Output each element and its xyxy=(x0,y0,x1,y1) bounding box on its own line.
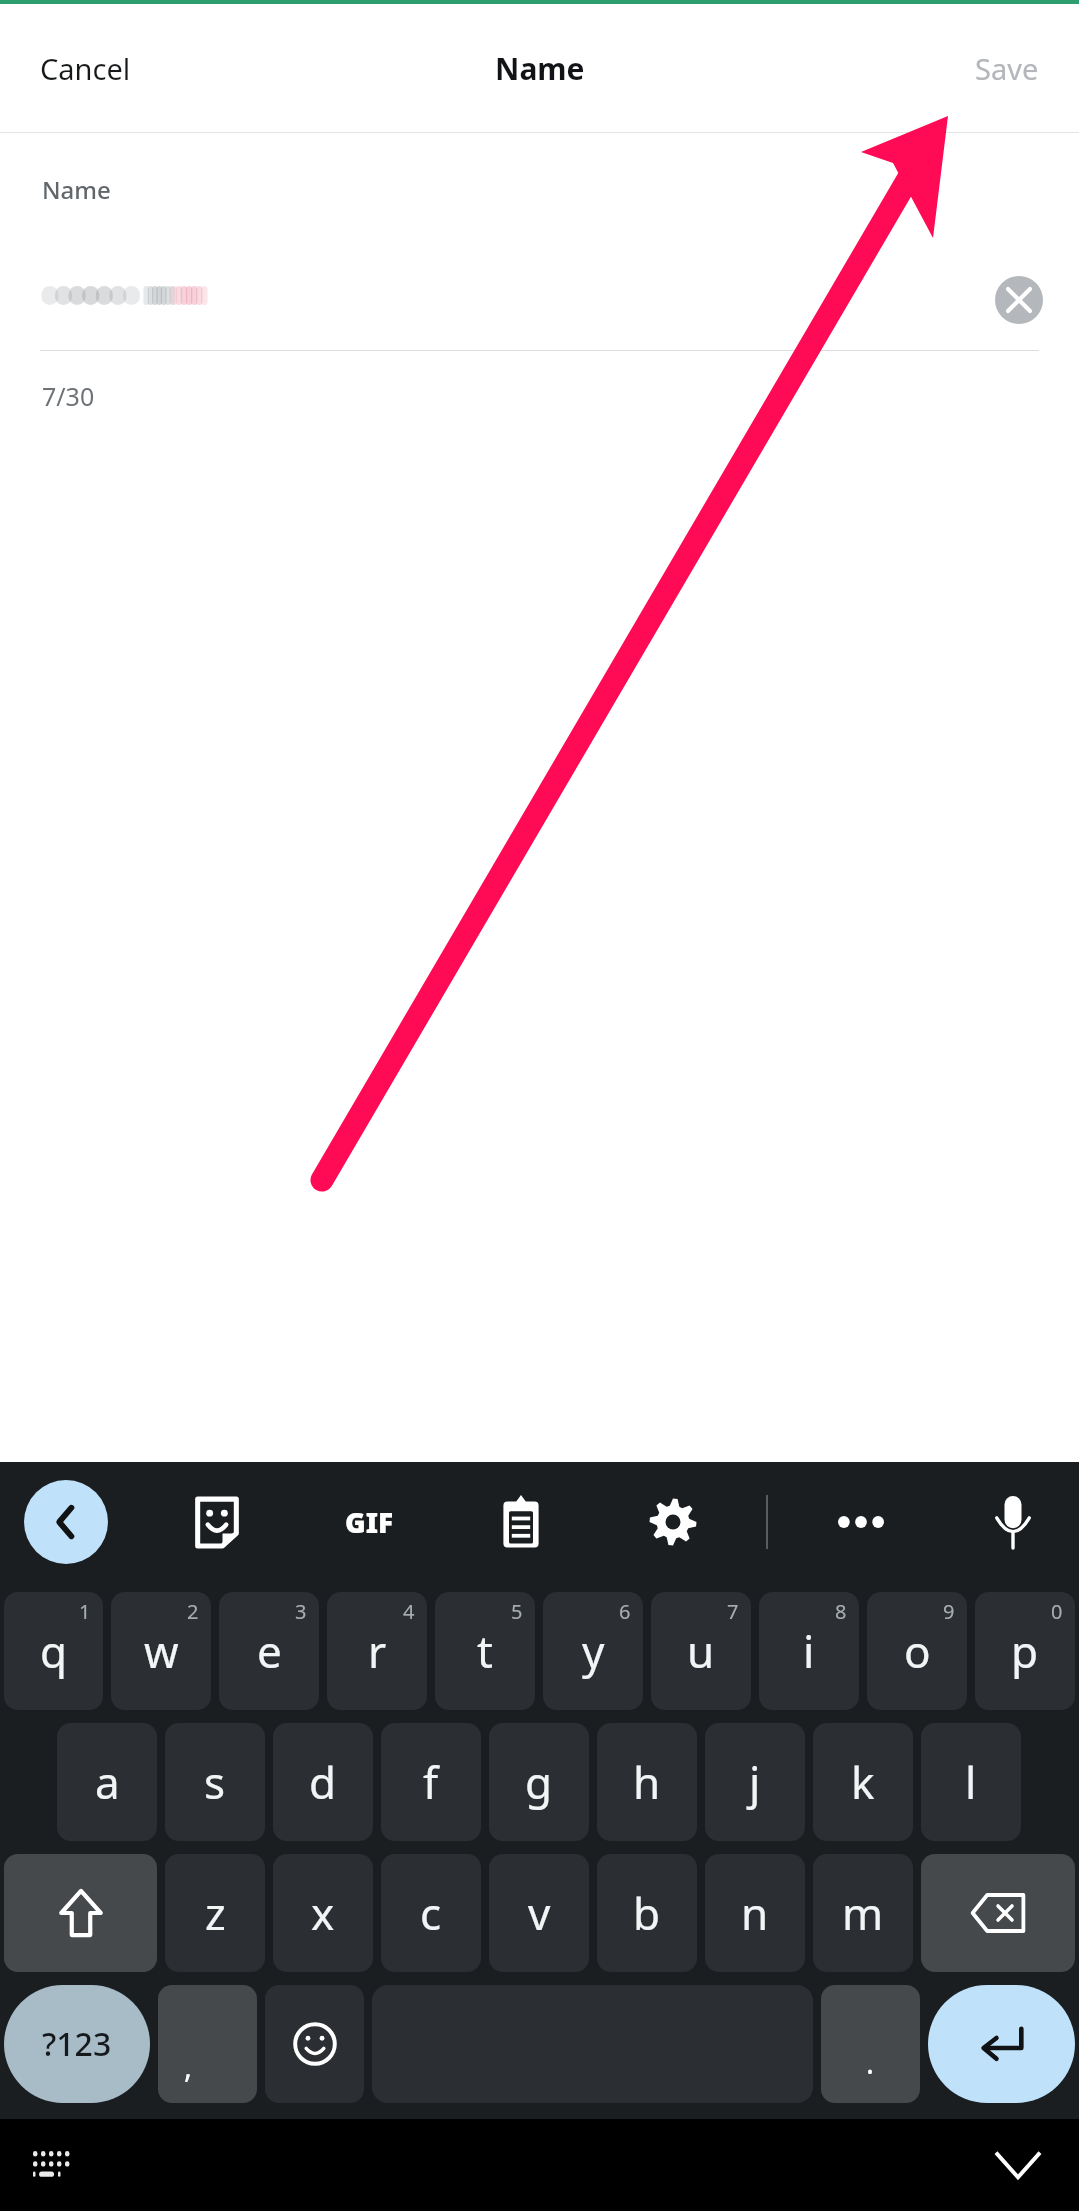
button[interactable]: Settings xyxy=(631,1480,715,1564)
button[interactable]: c xyxy=(381,1854,481,1972)
staticText: Cancel xyxy=(40,49,131,88)
button[interactable]: Hide keyboard xyxy=(983,2130,1053,2200)
button[interactable]: h xyxy=(597,1723,697,1841)
staticText: Save xyxy=(975,49,1039,88)
staticText: 1 xyxy=(79,1598,91,1625)
button[interactable]: p xyxy=(975,1592,1075,1710)
staticText: g xyxy=(525,1752,553,1812)
staticText: s xyxy=(204,1752,226,1812)
staticText: 9 xyxy=(943,1598,955,1625)
button[interactable]: f xyxy=(381,1723,481,1841)
staticText: 6 xyxy=(619,1598,631,1625)
button[interactable]: s xyxy=(165,1723,265,1841)
button[interactable]: Save xyxy=(953,35,1061,102)
button[interactable]: o xyxy=(867,1592,967,1710)
staticText: e xyxy=(257,1621,282,1681)
staticText: 4 xyxy=(403,1598,415,1625)
button[interactable]: q xyxy=(4,1592,103,1710)
button[interactable]: d xyxy=(273,1723,373,1841)
button[interactable]: e xyxy=(219,1592,319,1710)
button[interactable]: ?123 xyxy=(4,1985,150,2103)
staticText: a xyxy=(95,1752,120,1812)
button[interactable]: y xyxy=(543,1592,643,1710)
button[interactable]: z xyxy=(165,1854,265,1972)
button[interactable]: m xyxy=(813,1854,913,1972)
staticText: 2 xyxy=(187,1598,199,1625)
staticText: j xyxy=(749,1752,761,1812)
staticText: m xyxy=(842,1883,884,1943)
button[interactable]: Cancel xyxy=(18,35,153,102)
staticText: ?123 xyxy=(42,2022,112,2066)
staticText: p xyxy=(1011,1621,1039,1681)
button[interactable]: Switch keyboard xyxy=(20,2132,86,2198)
staticText: f xyxy=(423,1752,439,1812)
staticText: y xyxy=(582,1621,605,1681)
staticText: . xyxy=(866,2042,875,2083)
staticText: n xyxy=(741,1883,769,1943)
button[interactable]: v xyxy=(489,1854,589,1972)
staticText: x xyxy=(311,1883,335,1943)
button[interactable]: Back xyxy=(24,1480,108,1564)
staticText: GIF xyxy=(345,1503,394,1541)
button[interactable]: w xyxy=(111,1592,211,1710)
button[interactable]: Emoji xyxy=(265,1985,364,2103)
button[interactable]: n xyxy=(705,1854,805,1972)
button[interactable]: GIF xyxy=(327,1480,411,1564)
button[interactable]: More options xyxy=(819,1480,903,1564)
staticText: v xyxy=(528,1883,551,1943)
staticText: t xyxy=(477,1621,493,1681)
button[interactable]: g xyxy=(489,1723,589,1841)
button[interactable]: t xyxy=(435,1592,535,1710)
button[interactable]: j xyxy=(705,1723,805,1841)
button[interactable]: . xyxy=(821,1985,920,2103)
staticText: Name xyxy=(495,48,585,89)
button[interactable]: x xyxy=(273,1854,373,1972)
button[interactable]: Enter xyxy=(928,1985,1075,2103)
button[interactable]: u xyxy=(651,1592,751,1710)
staticText: b xyxy=(633,1883,661,1943)
button[interactable]: i xyxy=(759,1592,859,1710)
staticText: 7/30 xyxy=(42,379,95,413)
staticText: r xyxy=(368,1621,387,1681)
button[interactable]: Shift xyxy=(4,1854,157,1972)
staticText: 5 xyxy=(511,1598,523,1625)
button[interactable]: l xyxy=(921,1723,1021,1841)
staticText: 3 xyxy=(295,1598,307,1625)
staticText: o xyxy=(904,1621,931,1681)
button[interactable]: Backspace xyxy=(921,1854,1075,1972)
button[interactable]: k xyxy=(813,1723,913,1841)
button[interactable]: , xyxy=(158,1985,257,2103)
button[interactable]: Clipboard xyxy=(479,1480,563,1564)
button[interactable]: Stickers xyxy=(175,1480,259,1564)
staticText: h xyxy=(633,1752,661,1812)
staticText: q xyxy=(40,1621,68,1681)
button[interactable]: r xyxy=(327,1592,427,1710)
staticText: 0 xyxy=(1051,1598,1063,1625)
staticText: k xyxy=(851,1752,875,1812)
staticText: u xyxy=(687,1621,715,1681)
staticText: , xyxy=(184,2046,193,2087)
button[interactable]: a xyxy=(57,1723,157,1841)
staticText: 7 xyxy=(727,1598,739,1625)
staticText: Name xyxy=(42,173,111,206)
staticText: d xyxy=(309,1752,337,1812)
staticText: z xyxy=(205,1883,226,1943)
staticText: w xyxy=(144,1621,179,1681)
button[interactable]: b xyxy=(597,1854,697,1972)
staticText: l xyxy=(965,1752,977,1812)
button[interactable]: Clear text xyxy=(995,276,1043,324)
staticText: i xyxy=(803,1621,815,1681)
button[interactable]: Voice input xyxy=(971,1480,1055,1564)
staticText: c xyxy=(420,1883,442,1943)
staticText: 8 xyxy=(835,1598,847,1625)
